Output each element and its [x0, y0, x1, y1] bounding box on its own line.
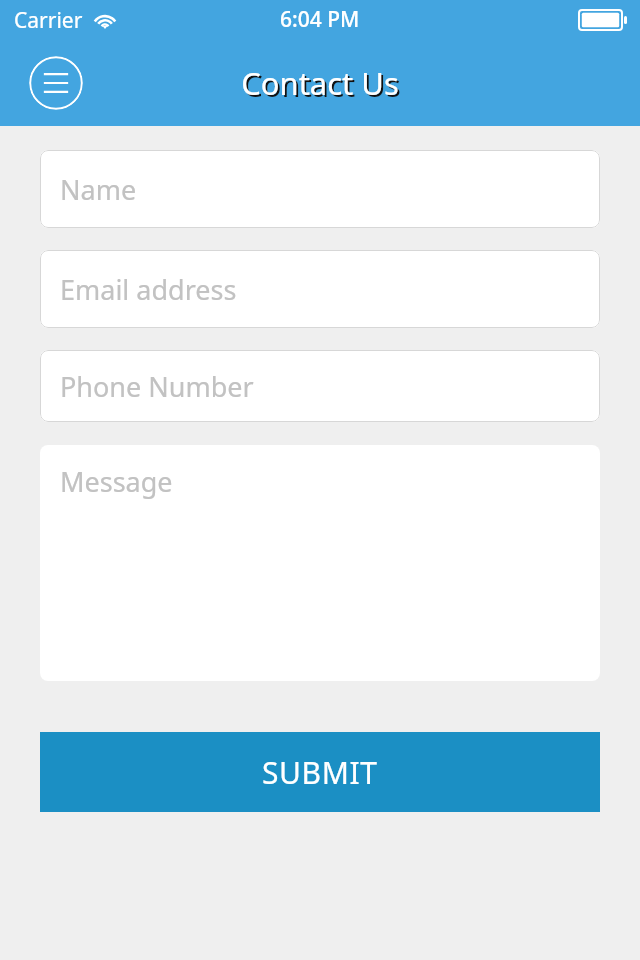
- button[interactable]: Email address: [40, 250, 600, 328]
- staticText: Name: [60, 171, 137, 208]
- staticText: Phone Number: [60, 368, 254, 405]
- button[interactable]: Name: [40, 150, 600, 228]
- button[interactable]: SUBMIT: [40, 732, 600, 812]
- staticText: Message: [60, 463, 173, 500]
- staticText: 6:04 PM: [280, 5, 360, 34]
- staticText: Contact Us: [243, 64, 401, 106]
- button[interactable]: Phone Number: [40, 350, 600, 422]
- button[interactable]: Message: [40, 445, 600, 681]
- staticText: Email address: [60, 271, 237, 308]
- staticText: SUBMIT: [262, 752, 378, 793]
- staticText: Carrier: [14, 6, 83, 35]
- staticText: Contact Us: [241, 62, 399, 104]
- button[interactable]: Open navigation menu: [29, 56, 83, 110]
